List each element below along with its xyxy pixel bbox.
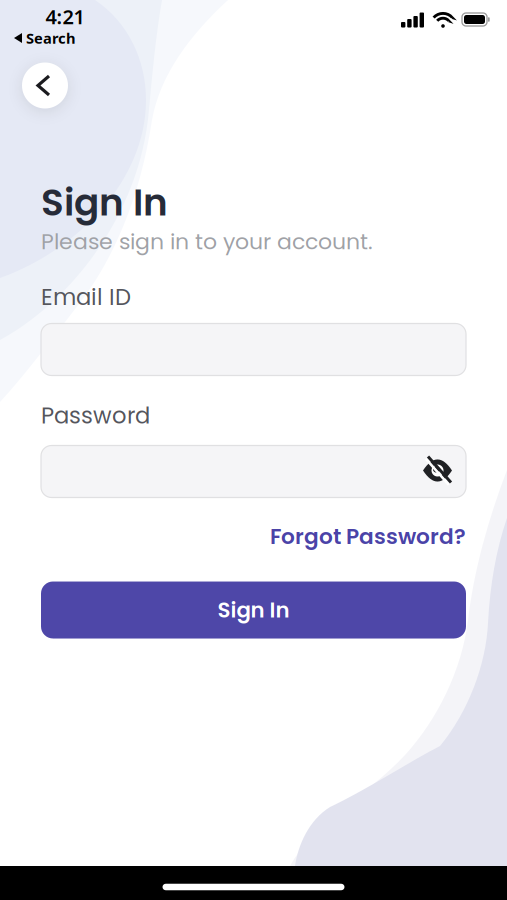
button[interactable]: [41, 445, 466, 497]
button[interactable]: Sign In: [41, 581, 466, 638]
staticText: Sign In: [217, 595, 289, 625]
button[interactable]: Forgot Password?: [41, 521, 466, 552]
button[interactable]: [22, 62, 68, 108]
staticText: Email ID: [41, 281, 131, 313]
staticText: 4:21: [45, 3, 84, 30]
button[interactable]: [41, 323, 466, 375]
staticText: Please sign in to your account.: [41, 226, 373, 257]
staticText: Sign In: [41, 176, 168, 229]
staticText: Search: [26, 28, 76, 48]
staticText: Forgot Password?: [270, 521, 466, 552]
staticText: Password: [41, 400, 150, 431]
